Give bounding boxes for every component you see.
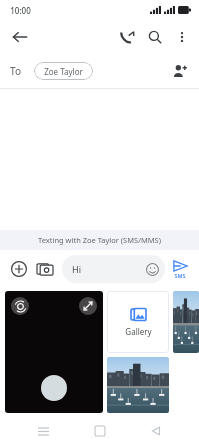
staticText: Texting with Zoe Taylor (SMS/MMS) <box>38 235 161 245</box>
button[interactable]: Take photo <box>41 375 67 401</box>
button[interactable]: Photo <box>107 357 169 413</box>
button[interactable]: Search <box>141 23 169 51</box>
button[interactable]: More options <box>169 24 195 50</box>
button[interactable]: Back <box>6 23 34 51</box>
button[interactable]: Gallery <box>107 291 169 353</box>
staticText: Hi <box>72 263 81 275</box>
button[interactable]: Call <box>113 23 141 51</box>
button[interactable]: Camera viewfinder <box>5 291 103 413</box>
button[interactable]: Camera <box>32 256 58 282</box>
button[interactable]: Recent apps <box>30 418 56 444</box>
button[interactable]: Add people <box>167 58 193 84</box>
staticText: SMS <box>174 272 186 279</box>
staticText: Zoe Taylor <box>44 66 83 77</box>
button[interactable]: Send SMS <box>167 260 193 279</box>
button[interactable]: Home <box>87 418 113 444</box>
button[interactable]: Add attachment <box>6 256 32 282</box>
button[interactable]: Zoe Taylor <box>34 62 93 80</box>
button[interactable]: Flip camera <box>11 297 29 315</box>
staticText: 10:00 <box>10 5 31 16</box>
button[interactable]: Photo <box>173 291 199 353</box>
button[interactable]: Back <box>143 418 169 444</box>
button[interactable]: Expand <box>79 297 97 315</box>
staticText: To <box>10 64 21 78</box>
staticText: Gallery <box>125 326 152 337</box>
button[interactable]: Hi <box>62 255 165 283</box>
